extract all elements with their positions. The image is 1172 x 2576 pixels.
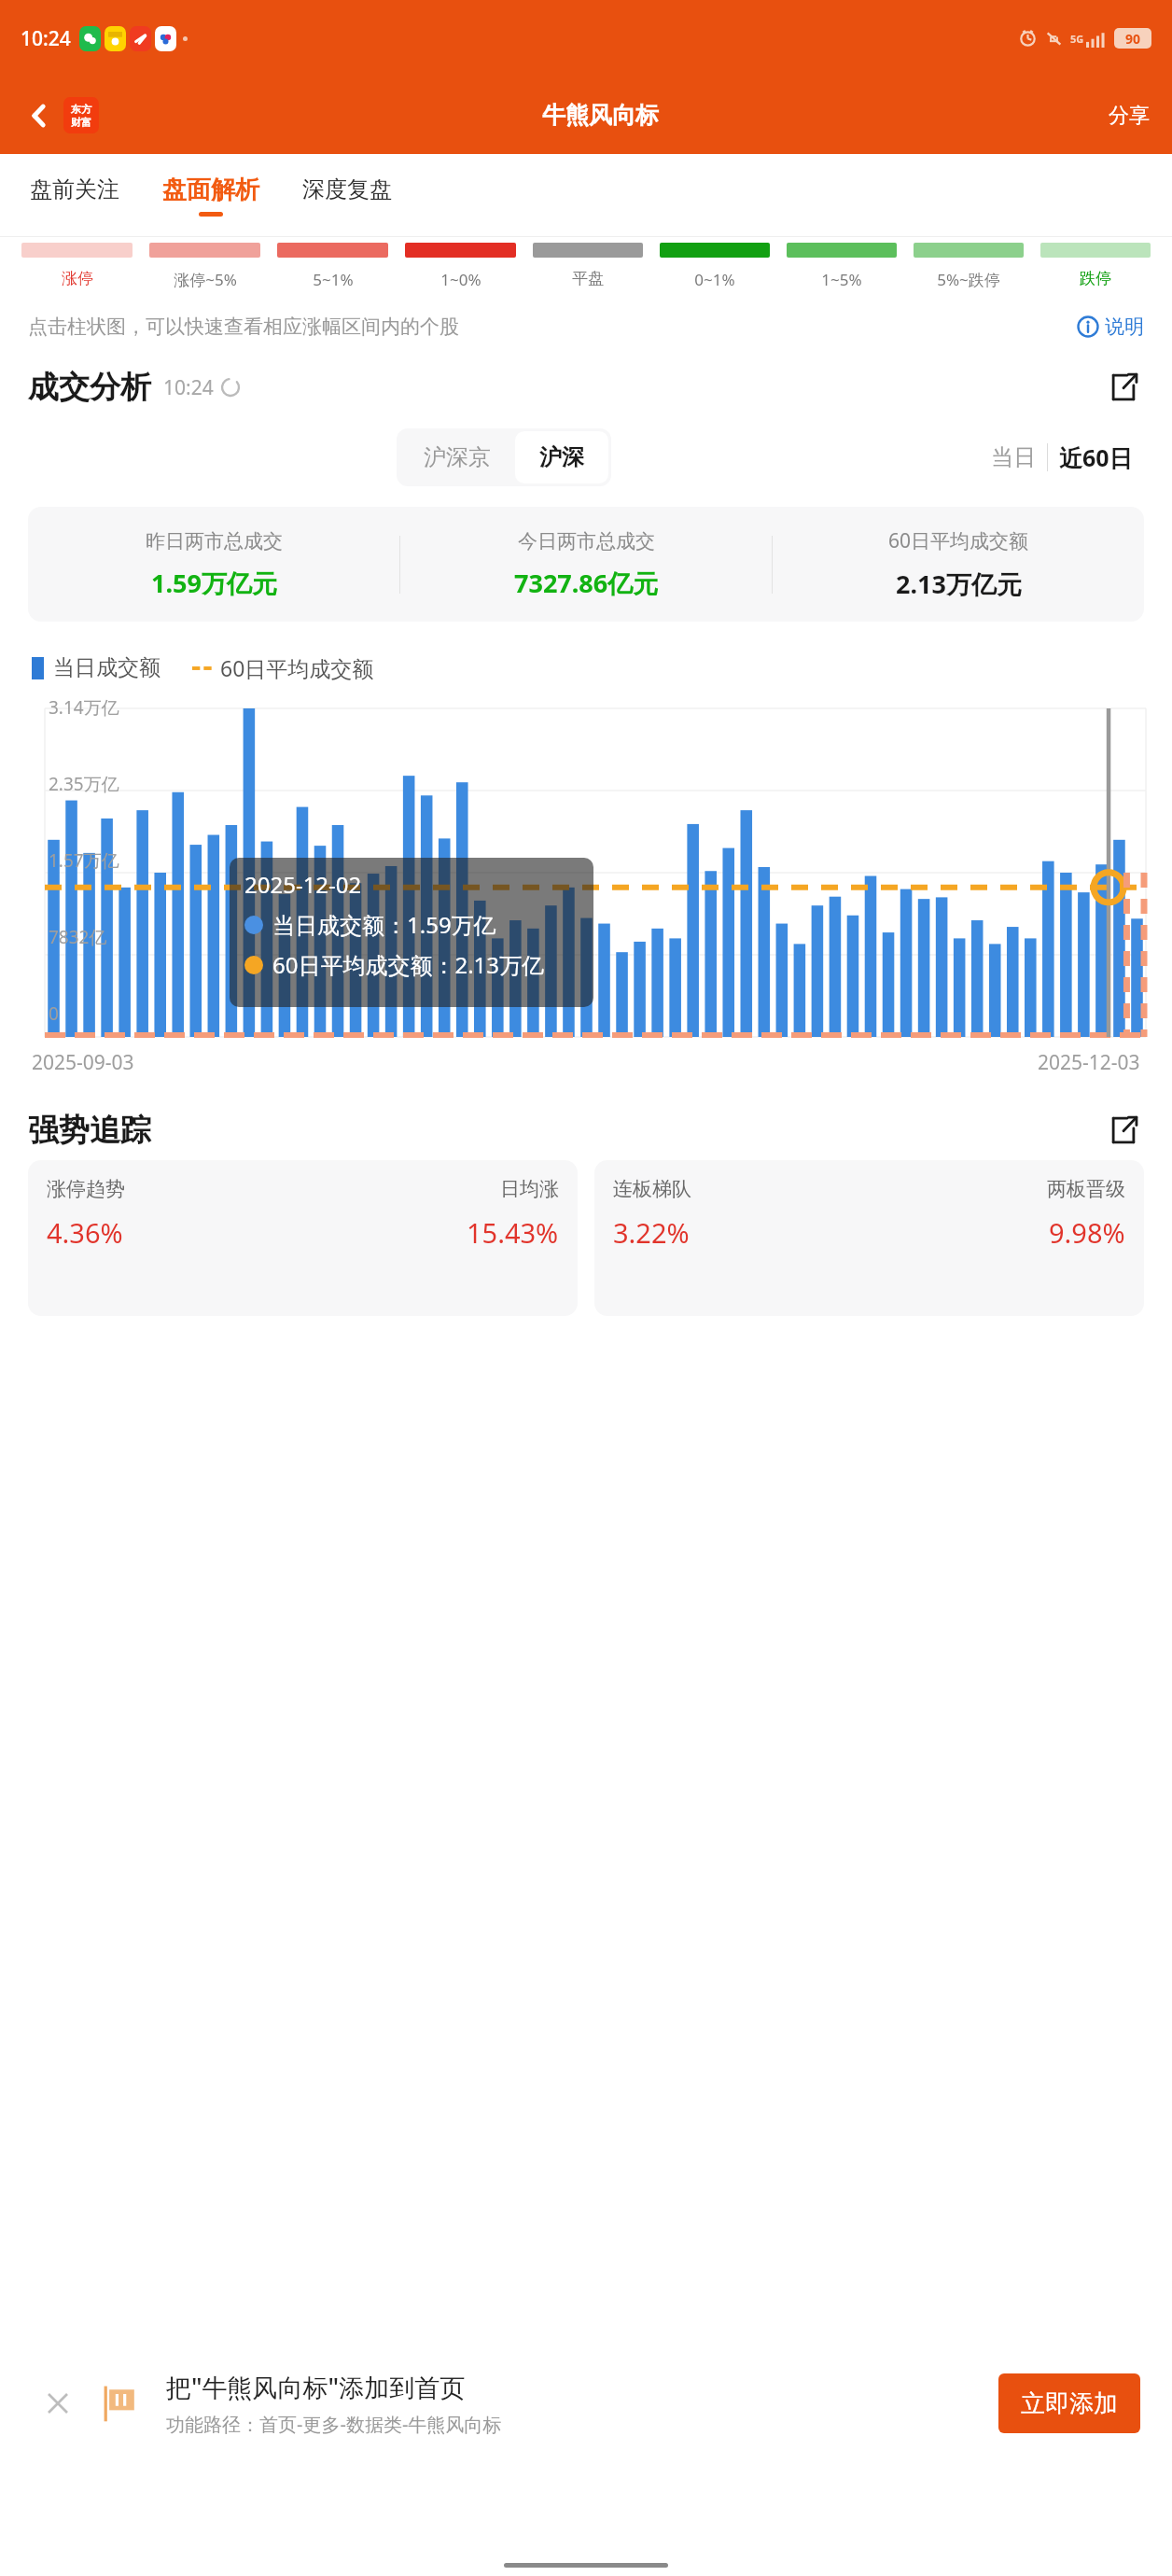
staticText: 9.98% [1049,1214,1125,1251]
button[interactable]: 说明 [1073,311,1148,343]
staticText: 10:24 [21,25,71,52]
staticText: 涨停 [62,269,93,288]
staticText: 强势追踪 [28,1111,151,1150]
button[interactable]: 深度复盘 [300,170,394,220]
staticText: 7832亿 [49,925,107,949]
button[interactable]: 涨停 [13,269,141,288]
button[interactable]: Close [32,2377,84,2429]
button[interactable]: 0~1% [651,269,778,290]
button[interactable]: 沪深京 [399,431,515,483]
button[interactable]: 5~1% [269,269,397,290]
staticText: 说明 [1105,315,1144,339]
button[interactable]: 涨停趋势 [28,1160,578,1316]
staticText: 沪深京 [424,443,491,471]
button[interactable]: 分享 [1103,97,1155,134]
staticText: 当日成交额：1.59万亿 [272,909,496,940]
staticText: 3.22% [613,1214,690,1251]
staticText: 盘前关注 [30,175,119,203]
button[interactable]: 沪深 [515,431,608,483]
staticText: 15.43% [467,1214,559,1251]
staticText: 5~1% [313,269,354,290]
button[interactable]: 东方财富 [63,97,99,133]
staticText: 7327.86亿元 [514,566,659,600]
staticText: 当日 [991,443,1036,471]
staticText: 财富 [71,116,91,129]
staticText: 立即添加 [1021,2388,1118,2419]
staticText: 深度复盘 [302,175,392,203]
button[interactable]: Back [17,93,62,138]
staticText: 跌停 [1080,269,1111,288]
staticText: 60日平均成交额：2.13万亿 [272,949,545,980]
staticText: 连板梯队 [613,1177,691,1201]
button[interactable]: 盘面解析 [160,169,261,222]
staticText: 1.57万亿 [49,848,119,873]
staticText: 点击柱状图，可以快速查看相应涨幅区间内的个股 [28,315,459,339]
staticText: 10:24 [163,374,214,401]
button[interactable]: Open 成交分析 [1103,367,1144,408]
staticText: 近60日 [1059,441,1133,473]
button[interactable]: 近60日 [1048,434,1144,481]
staticText: 60日平均成交额 [220,653,374,682]
button[interactable]: 平盘 [524,269,651,288]
button[interactable]: 涨停~5% [141,269,269,290]
button[interactable]: 连板梯队 [594,1160,1144,1316]
staticText: 把"牛熊风向标"添加到首页 [166,2370,466,2404]
staticText: 3.14万亿 [49,695,119,720]
staticText: 1~0% [440,269,481,290]
staticText: 东方 [71,103,91,116]
staticText: 1.59万亿元 [151,566,277,600]
button[interactable]: 跌停 [1032,269,1159,288]
staticText: 今日两市总成交 [518,529,655,553]
staticText: 牛熊风向标 [542,101,659,130]
staticText: 日均涨 [500,1177,559,1201]
staticText: 盘面解析 [162,175,259,205]
staticText: 90 [1125,30,1141,48]
staticText: 2025-12-03 [1038,1049,1140,1076]
button[interactable]: 今日两市总成交 [400,529,772,600]
button[interactable]: 当日 [980,436,1047,479]
staticText: 2.13万亿元 [896,567,1022,601]
staticText: 0~1% [694,269,735,290]
button[interactable]: 1~0% [397,269,524,290]
staticText: 2025-12-02 [244,869,362,900]
button[interactable]: 5%~跌停 [905,269,1032,290]
staticText: 涨停趋势 [47,1177,125,1201]
staticText: 昨日两市总成交 [146,529,283,553]
staticText: 5G [1070,32,1084,46]
staticText: 5%~跌停 [937,269,1000,290]
staticText: 1~5% [821,269,862,290]
button[interactable]: 昨日两市总成交 [28,529,399,600]
staticText: 涨停~5% [174,269,237,290]
button[interactable]: 盘前关注 [28,170,121,220]
button[interactable]: 立即添加 [998,2373,1140,2433]
staticText: 0 [49,1001,59,1026]
staticText: 2025-09-03 [32,1049,134,1076]
staticText: 两板晋级 [1047,1177,1125,1201]
button[interactable]: 60日平均成交额 [773,527,1144,601]
staticText: 沪深 [539,443,584,471]
staticText: 60日平均成交额 [888,527,1029,554]
staticText: 成交分析 [28,368,151,407]
staticText: 分享 [1109,103,1150,129]
staticText: 平盘 [572,269,604,288]
button[interactable]: Open 强势追踪 [1103,1110,1144,1151]
staticText: 2.35万亿 [49,772,119,796]
button[interactable]: 1~5% [778,269,905,290]
staticText: 功能路径：首页-更多-数据类-牛熊风向标 [166,2412,502,2437]
staticText: 4.36% [47,1214,123,1251]
staticText: 当日成交额 [53,654,160,681]
